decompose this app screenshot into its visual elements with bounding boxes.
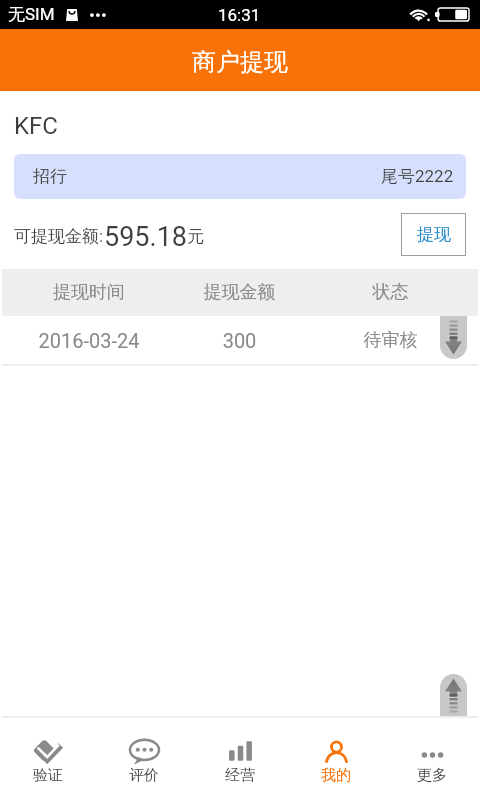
staticText: 16:31 — [218, 5, 261, 25]
staticText: 经营 — [225, 766, 255, 785]
staticText: 595.18 — [104, 221, 187, 253]
button[interactable]: 更多 — [384, 718, 480, 800]
button[interactable]: 经营 — [192, 718, 288, 800]
button[interactable]: 提现 — [401, 213, 466, 256]
staticText: 验证 — [33, 766, 63, 785]
staticText: 更多 — [417, 766, 447, 785]
staticText: 提现金额 — [164, 281, 315, 304]
other: Scroll down — [440, 316, 467, 359]
staticText: 商户提现 — [192, 47, 288, 77]
other: Scroll up — [440, 674, 467, 717]
button[interactable]: 2016-03-24 — [0, 316, 480, 364]
staticText: 评价 — [129, 766, 159, 785]
staticText: 招行 — [33, 166, 67, 187]
staticText: 提现 — [417, 224, 451, 245]
staticText: 元 — [187, 226, 204, 247]
staticText: 状态 — [315, 281, 466, 304]
staticText: 2016-03-24 — [14, 329, 164, 352]
staticText: 尾号2222 — [381, 166, 454, 187]
staticText: KFC — [14, 112, 58, 140]
button[interactable]: 验证 — [0, 718, 96, 800]
button[interactable]: 招行 — [14, 154, 466, 199]
button[interactable]: 我的 — [288, 718, 384, 800]
staticText: 待审核 — [315, 329, 466, 352]
staticText: 可提现金额: — [14, 226, 104, 247]
staticText: 我的 — [321, 766, 351, 785]
button[interactable]: 评价 — [96, 718, 192, 800]
staticText: 提现时间 — [14, 281, 164, 304]
staticText: 无SIM — [8, 4, 55, 25]
staticText: 300 — [164, 329, 315, 352]
